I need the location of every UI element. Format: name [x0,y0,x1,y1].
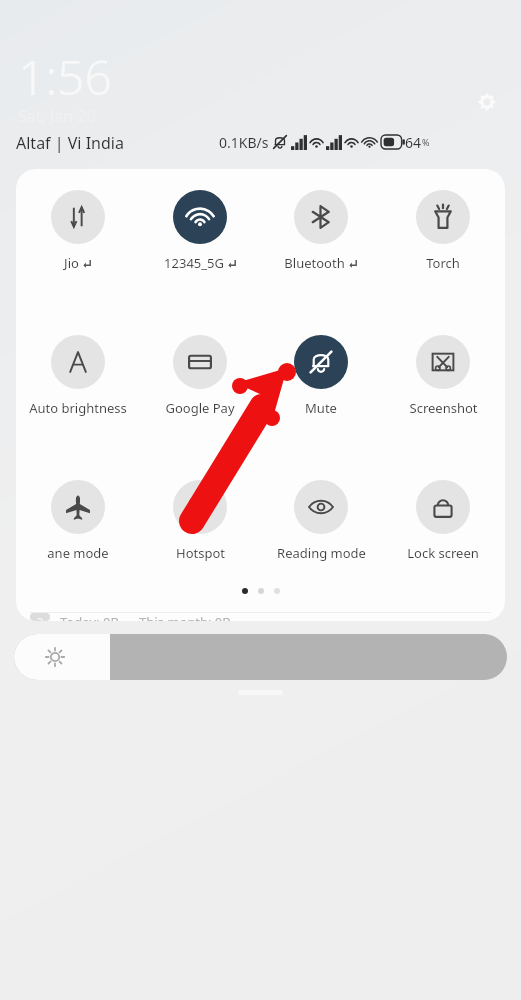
staticText: Today: 0B [60,613,119,621]
staticText: Torch [426,254,460,272]
button[interactable]: Lock screen [384,480,502,562]
staticText: Reading mode [277,544,366,562]
staticText: 64 [405,133,422,152]
button[interactable]: Mute [262,335,380,417]
staticText: Auto brightness [29,399,127,417]
button[interactable]: Brightness [14,634,507,680]
staticText: 12345_5G [164,254,224,272]
staticText: Lock screen [407,544,479,562]
button[interactable]: Reading mode [262,480,380,562]
button[interactable]: Bluetooth [262,190,380,272]
staticText: Bluetooth [284,254,345,272]
button[interactable]: Google Pay [141,335,259,417]
button[interactable]: ? [16,613,505,621]
staticText: 0.1KB/s [219,133,269,152]
staticText: This month: 0B [139,613,231,621]
staticText: Mute [305,399,337,417]
staticText: Hotspot [176,544,225,562]
button[interactable]: Torch [384,190,502,272]
staticText: % [422,136,430,148]
button[interactable]: Hotspot [141,480,259,562]
button[interactable]: ane mode [19,480,137,562]
button[interactable]: Settings [472,87,502,117]
button[interactable]: 12345_5G [141,190,259,272]
staticText: Altaf | Vi India [16,132,124,154]
staticText: Screenshot [409,399,478,417]
staticText: ane mode [47,544,109,562]
button[interactable]: Screenshot [384,335,502,417]
staticText: Google Pay [165,399,235,417]
button[interactable]: Jio [19,190,137,272]
staticText: ? [37,613,43,621]
staticText: 1:56 [18,44,112,109]
button[interactable]: Auto brightness [19,335,137,417]
staticText: Jio [64,254,79,272]
